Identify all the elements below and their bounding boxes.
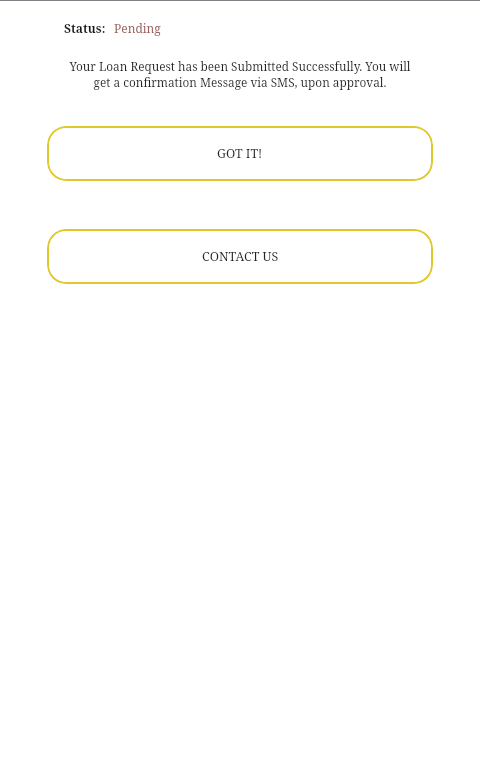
button[interactable]: CONTACT US [47,229,433,284]
staticText: CONTACT US [202,248,279,265]
button[interactable]: GOT IT! [47,126,433,181]
staticText: Your Loan Request has been Submitted Suc… [64,58,416,90]
staticText: Pending [114,20,161,36]
staticText: Status: [64,20,106,36]
staticText: GOT IT! [217,145,263,162]
